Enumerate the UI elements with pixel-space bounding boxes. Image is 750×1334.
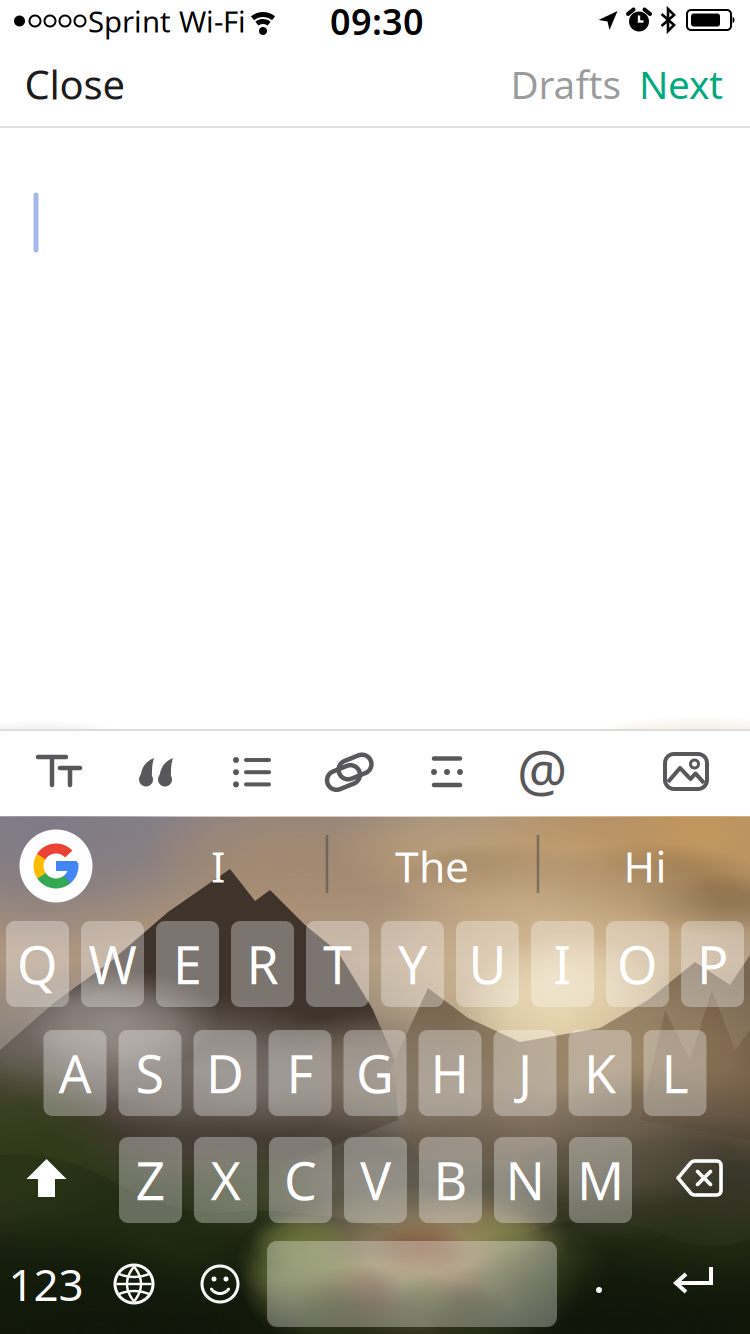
button[interactable]	[233, 756, 273, 788]
staticText: Close	[24, 57, 125, 110]
staticText: H	[430, 1038, 469, 1108]
button[interactable]	[139, 757, 177, 787]
button[interactable]: I	[531, 921, 594, 1007]
button[interactable]: E	[156, 921, 219, 1007]
button[interactable]	[432, 756, 462, 788]
staticText: F	[286, 1038, 313, 1108]
staticText: A	[58, 1038, 91, 1108]
staticText: 09:30	[330, 0, 424, 45]
staticText: Drafts	[510, 58, 621, 110]
button[interactable]: G	[343, 1030, 406, 1116]
staticText: I	[553, 929, 571, 999]
staticText: Y	[398, 929, 427, 999]
button[interactable]: N	[494, 1137, 557, 1223]
button[interactable]: Close	[24, 57, 125, 110]
button[interactable]: K	[568, 1030, 631, 1116]
button[interactable]	[267, 1241, 557, 1327]
button[interactable]	[665, 753, 709, 791]
staticText: D	[206, 1038, 244, 1108]
staticText: W	[88, 929, 136, 999]
button[interactable]	[202, 1266, 238, 1302]
button[interactable]	[579, 1260, 619, 1320]
button[interactable]: P	[681, 921, 744, 1007]
button[interactable]: C	[269, 1137, 332, 1223]
button[interactable]	[38, 754, 86, 790]
staticText: Hi	[623, 838, 666, 894]
staticText: Next	[639, 58, 723, 110]
button[interactable]: Y	[381, 921, 444, 1007]
button[interactable]: M	[569, 1137, 632, 1223]
button[interactable]: Next	[639, 58, 723, 110]
button[interactable]: I	[128, 836, 308, 896]
button[interactable]: A	[43, 1030, 106, 1116]
button[interactable]: Drafts	[510, 58, 621, 110]
staticText: I	[211, 838, 225, 894]
staticText: C	[284, 1145, 317, 1215]
button[interactable]: L	[643, 1030, 706, 1116]
button[interactable]: X	[194, 1137, 257, 1223]
staticText: J	[518, 1038, 532, 1108]
staticText: 123	[8, 1255, 83, 1313]
button[interactable]: D	[193, 1030, 256, 1116]
button[interactable]	[324, 752, 372, 792]
staticText: S	[135, 1038, 164, 1108]
button[interactable]: S	[118, 1030, 181, 1116]
staticText: N	[505, 1145, 545, 1215]
button[interactable]: T	[306, 921, 369, 1007]
staticText: Z	[135, 1145, 165, 1215]
staticText: G	[356, 1038, 394, 1108]
button[interactable]: Hi	[555, 836, 735, 896]
staticText: U	[468, 929, 506, 999]
staticText: L	[661, 1038, 688, 1108]
button[interactable]: @	[517, 733, 567, 807]
staticText: O	[617, 929, 658, 999]
button[interactable]: F	[268, 1030, 331, 1116]
staticText: M	[577, 1145, 624, 1215]
button[interactable]: Z	[119, 1137, 182, 1223]
button[interactable]	[115, 1265, 153, 1303]
staticText: Sprint Wi-Fi	[88, 1, 246, 40]
staticText: B	[433, 1145, 467, 1215]
staticText: X	[210, 1145, 240, 1215]
staticText: P	[697, 929, 728, 999]
staticText: E	[173, 929, 202, 999]
staticText: R	[246, 929, 278, 999]
staticText: K	[584, 1038, 616, 1108]
staticText: The	[395, 838, 469, 894]
button[interactable]: R	[231, 921, 294, 1007]
button[interactable]	[19, 829, 92, 902]
button[interactable]: J	[493, 1030, 556, 1116]
button[interactable]	[674, 1267, 714, 1299]
staticText: @	[517, 733, 567, 807]
staticText: T	[323, 929, 352, 999]
button[interactable]: 123	[6, 1249, 86, 1319]
button[interactable]: H	[418, 1030, 481, 1116]
staticText: V	[360, 1145, 391, 1215]
button[interactable]	[26, 1159, 66, 1199]
button[interactable]: The	[342, 836, 522, 896]
staticText: Q	[17, 929, 58, 999]
button[interactable]: O	[606, 921, 669, 1007]
button[interactable]: B	[419, 1137, 482, 1223]
button[interactable]: Q	[6, 921, 69, 1007]
button[interactable]: W	[81, 921, 144, 1007]
button[interactable]: V	[344, 1137, 407, 1223]
button[interactable]	[676, 1159, 724, 1197]
button[interactable]: U	[456, 921, 519, 1007]
